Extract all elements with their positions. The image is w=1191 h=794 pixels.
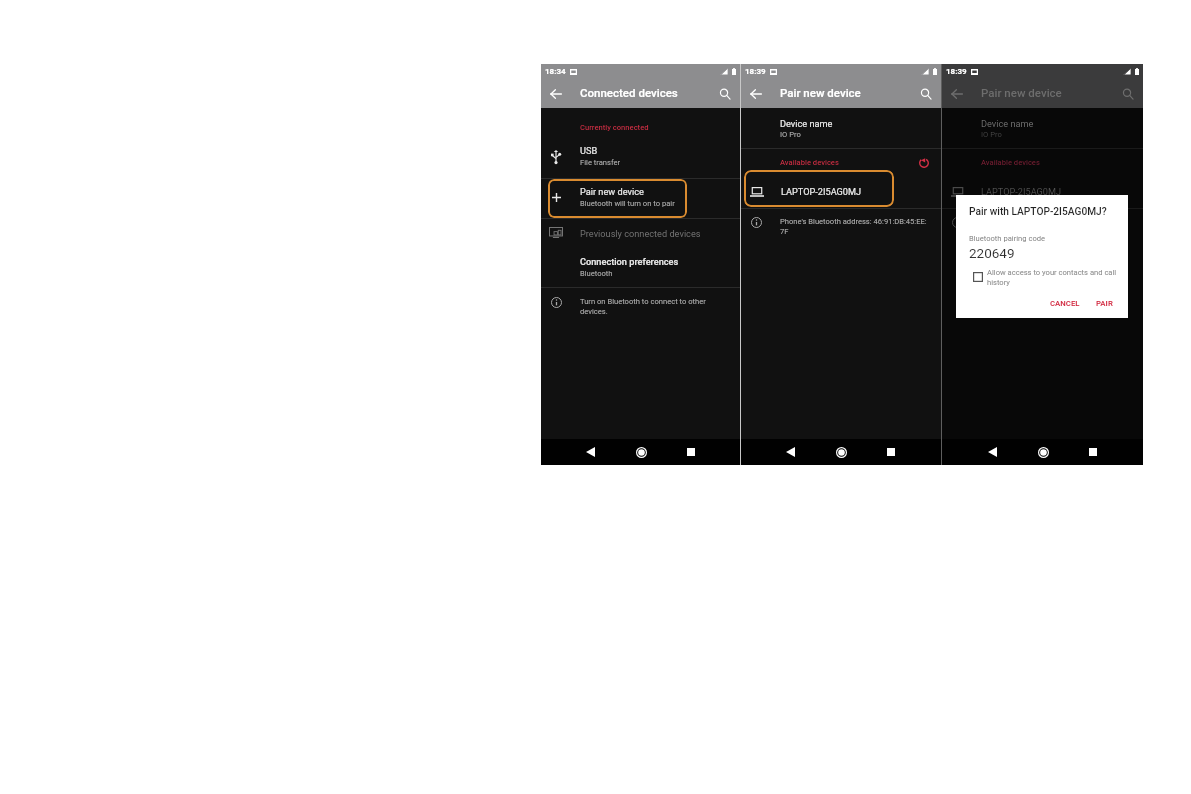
- staticText: Available devices: [981, 158, 1040, 167]
- staticText: Turn on Bluetooth to connect to other de…: [580, 297, 732, 316]
- staticText: 18:39: [745, 67, 766, 76]
- button[interactable]: Recent apps: [681, 442, 701, 462]
- staticText: Pair new device: [981, 86, 1062, 99]
- staticText: IO Pro: [780, 130, 801, 139]
- button[interactable]: Back: [580, 442, 600, 462]
- staticText: Bluetooth will turn on to pair: [580, 199, 675, 208]
- button[interactable]: Search: [916, 84, 936, 104]
- button[interactable]: Search: [715, 84, 735, 104]
- staticText: LAPTOP-2I5AG0MJ: [981, 186, 1062, 197]
- button[interactable]: Home: [1033, 442, 1053, 462]
- staticText: PAIR: [1096, 299, 1113, 308]
- staticText: 18:34: [545, 67, 566, 76]
- button[interactable]: CANCEL: [1046, 296, 1084, 311]
- staticText: CANCEL: [1050, 299, 1080, 308]
- button[interactable]: Refresh: [914, 153, 933, 172]
- staticText: Allow access to your contacts and call h…: [987, 268, 1127, 287]
- button[interactable]: Search: [1118, 84, 1138, 104]
- button[interactable]: Pair new device: [548, 179, 687, 218]
- button[interactable]: Back: [780, 442, 800, 462]
- staticText: Device name: [981, 118, 1034, 129]
- staticText: Bluetooth: [580, 269, 613, 278]
- button[interactable]: Home: [831, 442, 851, 462]
- button[interactable]: Back: [746, 84, 766, 104]
- staticText: Device name: [780, 118, 833, 129]
- button[interactable]: Back: [982, 442, 1002, 462]
- staticText: Currently connected: [580, 123, 649, 132]
- staticText: Available devices: [780, 158, 839, 167]
- button[interactable]: LAPTOP-2I5AG0MJ: [744, 170, 894, 207]
- staticText: Bluetooth pairing code: [969, 234, 1046, 243]
- staticText: Phone's Bluetooth address: 46:91:DB:45:E…: [780, 217, 940, 236]
- staticText: LAPTOP-2I5AG0MJ: [781, 186, 862, 197]
- staticText: Pair new device: [780, 86, 861, 99]
- staticText: Previously connected devices: [580, 228, 701, 239]
- staticText: 18:39: [946, 67, 967, 76]
- button[interactable]: Back: [546, 84, 566, 104]
- button[interactable]: Previously connected devices: [541, 219, 740, 250]
- staticText: Phone's Bluetooth address: 46:91:DB:45:E…: [981, 217, 1141, 236]
- staticText: USB: [580, 145, 598, 156]
- staticText: Pair new device: [580, 186, 644, 197]
- button[interactable]: Home: [631, 442, 651, 462]
- staticText: File transfer: [580, 158, 621, 167]
- button[interactable]: Device name: [741, 112, 941, 148]
- button[interactable]: Device name: [942, 112, 1143, 148]
- button[interactable]: Back: [947, 84, 967, 104]
- button[interactable]: Connection preferences: [541, 250, 740, 287]
- staticText: 220649: [969, 245, 1015, 261]
- button[interactable]: PAIR: [1092, 296, 1117, 311]
- staticText: Connected devices: [580, 86, 678, 99]
- button[interactable]: USB: [541, 142, 740, 176]
- staticText: IO Pro: [981, 130, 1002, 139]
- button[interactable]: Recent apps: [1083, 442, 1103, 462]
- button[interactable]: LAPTOP-2I5AG0MJ: [942, 170, 1143, 207]
- staticText: Pair with LAPTOP-2I5AG0MJ?: [969, 206, 1107, 218]
- staticText: Connection preferences: [580, 256, 679, 267]
- button[interactable]: Recent apps: [881, 442, 901, 462]
